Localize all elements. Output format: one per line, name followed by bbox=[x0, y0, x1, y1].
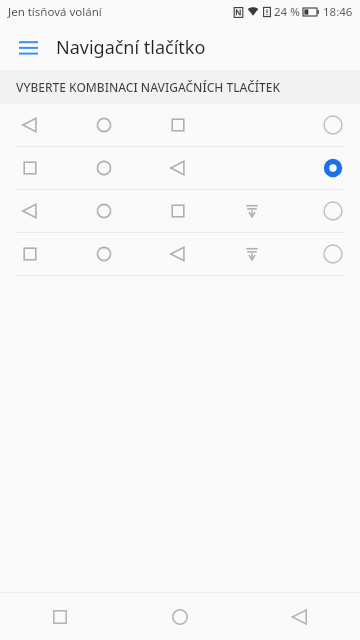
staticText: 18:46 bbox=[323, 4, 353, 20]
button[interactable] bbox=[0, 147, 360, 190]
button[interactable] bbox=[0, 233, 360, 276]
button[interactable]: Menu bbox=[8, 27, 48, 67]
button[interactable]: Home bbox=[120, 593, 240, 640]
button[interactable]: Back bbox=[240, 593, 360, 640]
button[interactable] bbox=[0, 190, 360, 233]
button[interactable]: Recent apps bbox=[0, 593, 120, 640]
button[interactable] bbox=[0, 104, 360, 147]
staticText: VYBERTE KOMBINACI NAVIGAČNÍCH TLAČÍTEK bbox=[16, 79, 281, 95]
staticText: Jen tísňová volání bbox=[8, 4, 102, 20]
staticText: Navigační tlačítko bbox=[56, 35, 206, 60]
staticText: 24 % bbox=[274, 4, 300, 20]
